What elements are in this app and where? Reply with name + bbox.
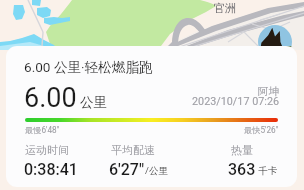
staticText: 0:38:41: [24, 160, 78, 179]
staticText: 6.00 公里·轻松燃脂跑: [24, 59, 153, 76]
staticText: 公里: [80, 94, 107, 111]
staticText: 6.00: [24, 82, 77, 114]
button[interactable]: 6.00 公里·轻松燃脂跑: [6, 46, 297, 187]
staticText: /公里: [145, 165, 168, 177]
staticText: 千卡: [256, 165, 278, 177]
staticText: 2023/10/17 07:26: [192, 95, 280, 108]
staticText: 运动时间: [25, 143, 69, 157]
staticText: 热量: [231, 143, 253, 157]
staticText: 平均配速: [111, 143, 155, 157]
staticText: 最快5'26": [244, 125, 279, 135]
button[interactable]: Profile avatar: [258, 25, 292, 59]
staticText: 最慢6'48": [25, 125, 60, 135]
staticText: 官洲: [214, 1, 236, 15]
staticText: 阿坤: [258, 85, 279, 98]
staticText: 363: [228, 160, 256, 179]
staticText: 6'27": [109, 160, 145, 179]
